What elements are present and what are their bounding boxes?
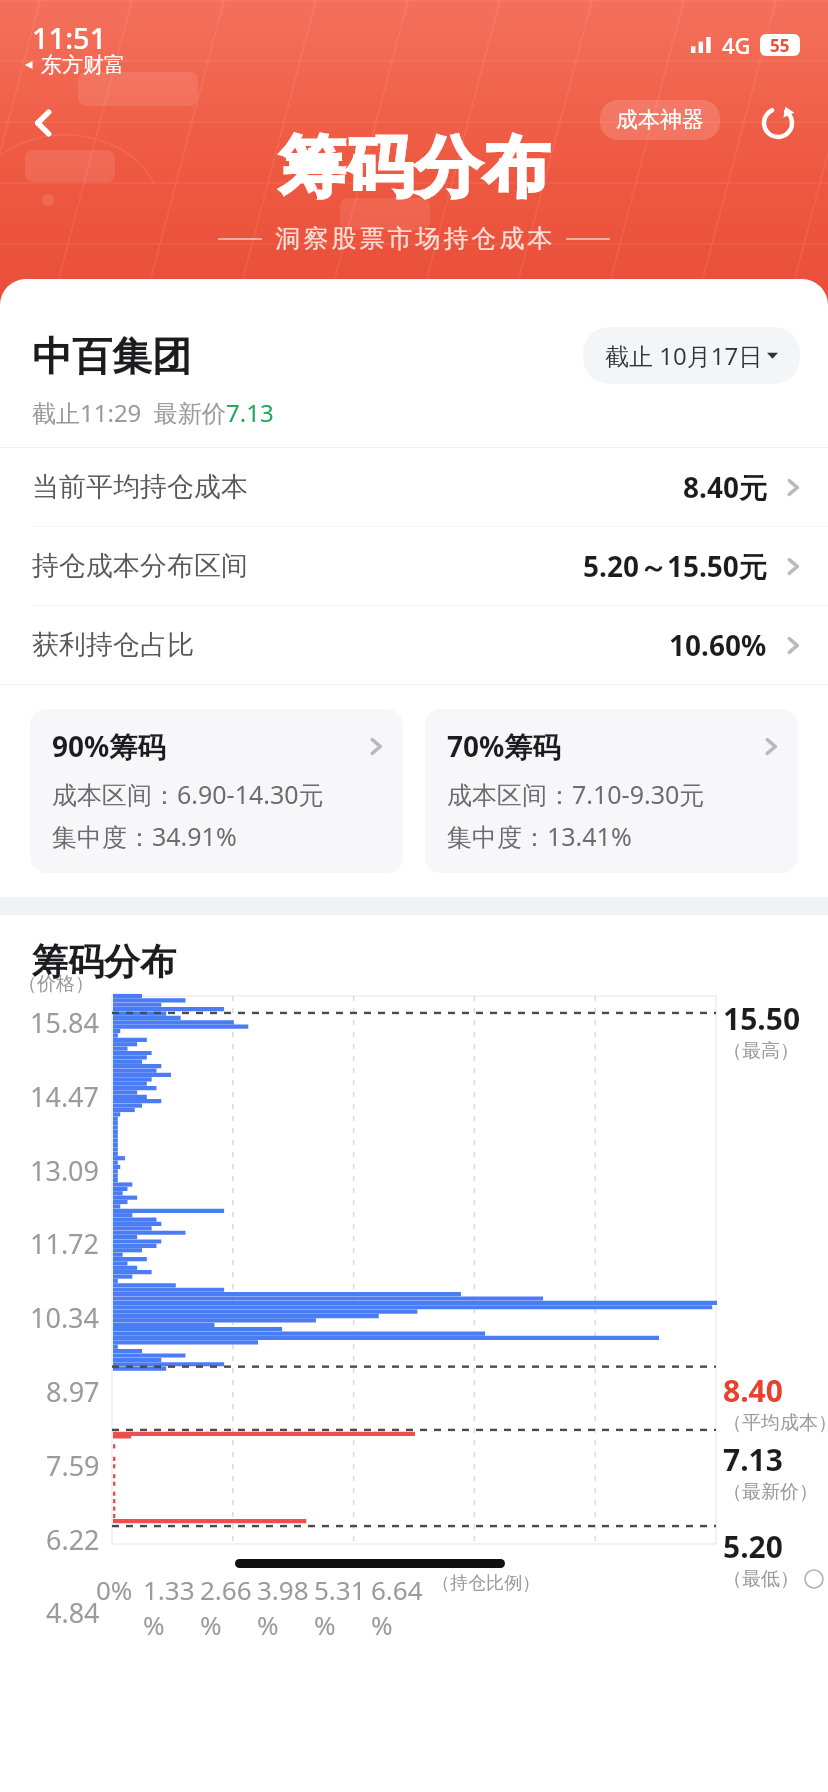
staticText: 4G: [722, 30, 751, 60]
staticText: 洞察股票市场持仓成本: [274, 223, 554, 254]
staticText: （持仓比例）: [432, 1572, 540, 1595]
staticText: 11:51: [32, 18, 107, 57]
staticText: 3.98%: [257, 1572, 314, 1642]
staticText: （最低）: [723, 1567, 799, 1591]
staticText: 5.20～15.50元: [583, 547, 767, 585]
staticText: 11.72: [30, 1225, 100, 1262]
staticText: 4.84: [46, 1594, 100, 1631]
staticText: （最高）: [723, 1039, 799, 1063]
staticText: 6.64%: [371, 1572, 428, 1642]
staticText: 55: [770, 34, 790, 56]
button[interactable]: 截止 10月17日: [583, 327, 800, 384]
staticText: （价格）: [18, 972, 94, 996]
staticText: 8.97: [46, 1373, 100, 1410]
button[interactable]: 当前平均持仓成本: [0, 448, 828, 526]
staticText: 截止11:29 最新价: [32, 396, 226, 429]
other: Help: [804, 1569, 824, 1589]
button[interactable]: 获利持仓占比: [0, 606, 828, 684]
staticText: 90%筹码: [52, 727, 166, 765]
staticText: 70%筹码: [447, 727, 561, 765]
button[interactable]: 成本神器: [600, 100, 720, 140]
staticText: 8.40元: [683, 468, 767, 506]
staticText: 1.33%: [143, 1572, 200, 1642]
staticText: 0%: [96, 1572, 133, 1607]
staticText: 7.59: [46, 1447, 100, 1484]
staticText: 7.13: [226, 396, 274, 429]
staticText: 7.13: [723, 1439, 783, 1480]
staticText: 13.09: [30, 1152, 100, 1189]
staticText: 成本神器: [616, 106, 704, 134]
button[interactable]: Refresh: [750, 95, 806, 151]
staticText: 10.60%: [669, 626, 767, 664]
staticText: 中百集团: [32, 331, 192, 381]
staticText: 14.47: [30, 1078, 100, 1115]
staticText: 8.40: [723, 1370, 783, 1411]
staticText: 2.66%: [200, 1572, 257, 1642]
staticText: 5.31%: [314, 1572, 371, 1642]
staticText: 筹码分布: [32, 939, 176, 984]
staticText: 集中度：13.41%: [447, 819, 632, 853]
button[interactable]: Back: [16, 95, 72, 151]
staticText: （最新价）: [723, 1480, 818, 1504]
button[interactable]: 持仓成本分布区间: [0, 527, 828, 605]
staticText: 6.22: [46, 1521, 100, 1558]
button[interactable]: 90%筹码: [30, 709, 403, 873]
staticText: 5.20: [723, 1526, 783, 1567]
button[interactable]: 70%筹码: [425, 709, 798, 873]
staticText: 集中度：34.91%: [52, 819, 237, 853]
staticText: 成本区间：6.90-14.30元: [52, 777, 324, 811]
staticText: 持仓成本分布区间: [32, 549, 248, 583]
staticText: 获利持仓占比: [32, 628, 194, 662]
staticText: 截止 10月17日: [605, 339, 763, 372]
staticText: 筹码分布: [278, 126, 550, 209]
staticText: 10.34: [30, 1299, 100, 1336]
staticText: （平均成本）: [723, 1411, 828, 1435]
staticText: 当前平均持仓成本: [32, 470, 248, 504]
staticText: 成本区间：7.10-9.30元: [447, 777, 705, 811]
staticText: 东方财富: [41, 52, 125, 78]
staticText: 15.84: [30, 1004, 100, 1041]
staticText: 15.50: [723, 998, 801, 1039]
